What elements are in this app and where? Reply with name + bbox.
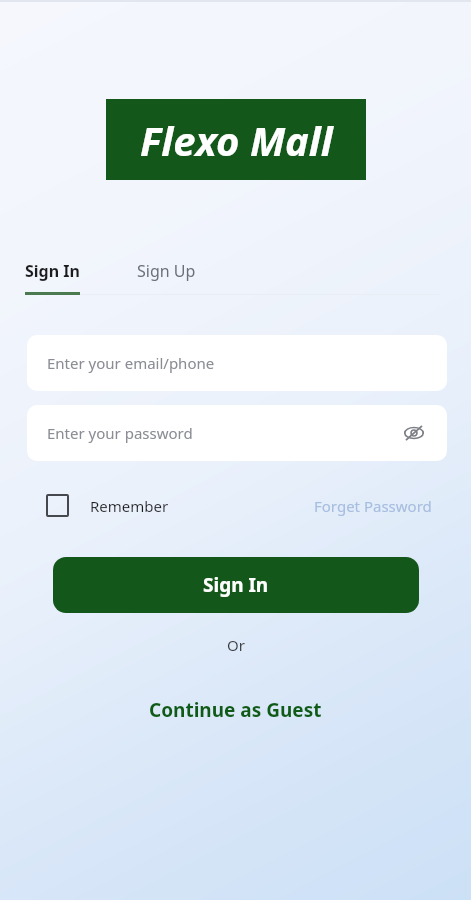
button[interactable]: Continue as Guest [0,697,471,723]
staticText: Enter your password [47,423,193,443]
button[interactable]: Enter your email/phone [27,335,447,391]
staticText: Sign In [203,572,269,598]
staticText: Enter your email/phone [47,353,215,373]
staticText: Sign Up [137,260,196,282]
button[interactable]: Show password [399,418,429,448]
button[interactable]: Sign In [53,557,419,613]
staticText: Or [227,635,245,655]
staticText: Continue as Guest [149,697,322,723]
button[interactable]: Remember [46,494,169,517]
button[interactable]: Enter your password [27,405,447,461]
staticText: Sign In [25,260,80,282]
staticText: Remember [90,496,169,516]
button[interactable]: Sign Up [137,260,196,282]
staticText: Flexo Mall [140,113,333,167]
button[interactable]: Forget Password [314,496,432,516]
button[interactable]: Sign In [25,260,80,282]
staticText: Forget Password [314,496,432,516]
